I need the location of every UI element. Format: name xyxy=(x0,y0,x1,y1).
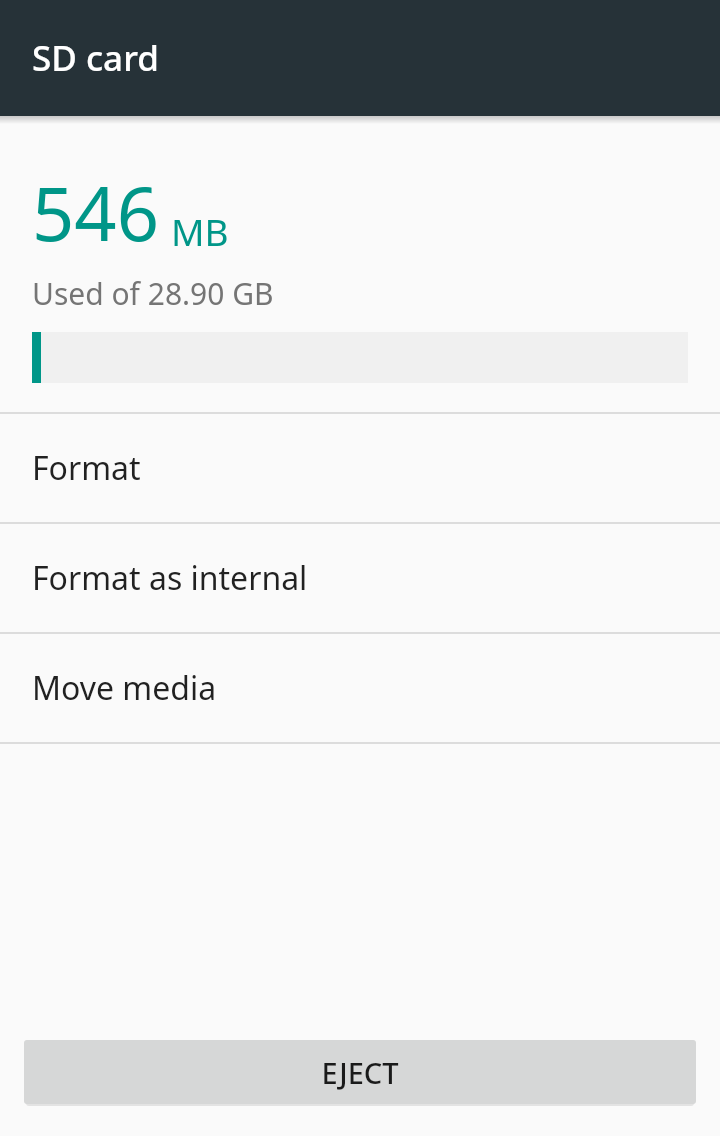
button[interactable]: Format as internal xyxy=(0,524,720,632)
staticText: Format xyxy=(32,446,141,490)
staticText: SD card xyxy=(32,34,159,82)
button[interactable]: EJECT xyxy=(24,1040,696,1104)
staticText: Move media xyxy=(32,666,217,710)
button[interactable]: Format xyxy=(0,414,720,522)
staticText: MB xyxy=(171,206,229,256)
staticText: Format as internal xyxy=(32,556,308,600)
button[interactable]: Move media xyxy=(0,634,720,742)
staticText: Used of 28.90 GB xyxy=(32,273,274,314)
staticText: 546 xyxy=(32,162,159,263)
staticText: EJECT xyxy=(321,1053,399,1092)
